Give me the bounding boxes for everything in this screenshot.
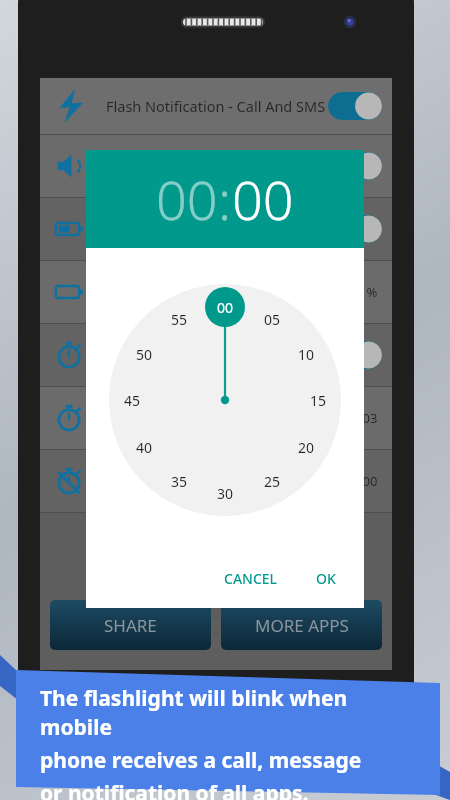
- staticText: 25: [264, 472, 281, 491]
- button[interactable]: Toggle: [40, 135, 392, 197]
- staticText: :00: [359, 472, 378, 490]
- staticText: 00: [156, 162, 218, 236]
- staticText: phone receives a call, message: [40, 746, 362, 775]
- staticText: 05: [264, 310, 281, 329]
- staticText: MORE APPS: [255, 614, 349, 637]
- staticText: OK: [316, 569, 336, 588]
- button[interactable]: MORE APPS: [221, 600, 382, 650]
- button[interactable]: Disa: [40, 198, 392, 260]
- staticText: 55: [171, 310, 188, 329]
- button[interactable]: 35: [164, 471, 194, 491]
- staticText: 10: [298, 345, 315, 364]
- staticText: %: [363, 283, 378, 301]
- button[interactable]: 45: [117, 390, 147, 410]
- staticText: 40: [136, 438, 153, 457]
- button[interactable]: CANCEL: [214, 561, 288, 596]
- button[interactable]: 20: [291, 437, 321, 457]
- staticText: 00: [217, 298, 234, 317]
- button[interactable]: Enal: [40, 324, 392, 386]
- staticText: Flash Notification - Call And SMS: [106, 96, 326, 116]
- button[interactable]: Flash Notification - Call And SMS: [40, 78, 392, 134]
- staticText: Enal: [98, 346, 126, 365]
- button[interactable]: Toggle: [328, 215, 382, 243]
- button[interactable]: Toggle: [328, 152, 382, 180]
- button[interactable]: Toggle: [328, 341, 382, 369]
- staticText: CANCEL: [224, 569, 278, 588]
- button[interactable]: 05: [257, 309, 287, 329]
- button[interactable]: 15: [303, 390, 333, 410]
- button[interactable]: Toggle: [328, 92, 382, 120]
- staticText: 30: [217, 484, 234, 503]
- button[interactable]: 10: [291, 344, 321, 364]
- button[interactable]: 40: [129, 437, 159, 457]
- button[interactable]: OK: [306, 561, 346, 596]
- button[interactable]: 25: [257, 471, 287, 491]
- staticText: 35: [171, 472, 188, 491]
- button[interactable]: :00: [40, 450, 392, 512]
- staticText: :: [218, 162, 232, 236]
- button[interactable]: 00: [210, 297, 240, 317]
- staticText: :03: [359, 409, 378, 427]
- staticText: 45: [124, 391, 141, 410]
- button[interactable]: 50: [129, 344, 159, 364]
- button[interactable]: 55: [164, 309, 194, 329]
- button[interactable]: 30: [210, 483, 240, 503]
- staticText: or notification of all apps.: [40, 779, 309, 800]
- staticText: The flashlight will blink when mobile: [40, 684, 420, 742]
- staticText: 20: [298, 438, 315, 457]
- button[interactable]: %: [40, 261, 392, 323]
- button[interactable]: SHARE: [50, 600, 211, 650]
- staticText: 00: [232, 162, 294, 236]
- button[interactable]: :03: [40, 387, 392, 449]
- staticText: 15: [310, 391, 327, 410]
- staticText: 50: [136, 345, 153, 364]
- staticText: SHARE: [104, 614, 157, 637]
